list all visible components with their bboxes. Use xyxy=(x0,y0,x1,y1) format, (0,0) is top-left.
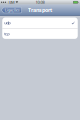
staticText: 10:08 xyxy=(35,0,44,5)
button[interactable]: Ligações xyxy=(1,7,22,13)
staticText: tcp xyxy=(4,31,9,36)
staticText: TIM xyxy=(8,0,15,5)
staticText: Transport xyxy=(28,6,52,14)
button[interactable]: tcp xyxy=(2,28,78,39)
button[interactable]: udp xyxy=(2,17,78,28)
staticText: udp xyxy=(4,20,10,25)
staticText: Ligações xyxy=(5,7,20,13)
